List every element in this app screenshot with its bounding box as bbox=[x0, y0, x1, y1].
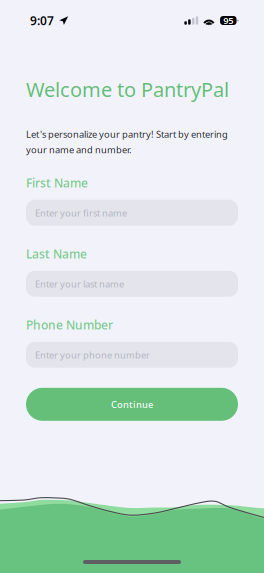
staticText: 9:07 bbox=[30, 12, 54, 28]
staticText: Let's personalize your pantry! Start by … bbox=[26, 128, 228, 156]
button[interactable]: Enter your last name bbox=[26, 271, 238, 297]
staticText: Enter your first name bbox=[35, 207, 127, 219]
staticText: Enter your last name bbox=[35, 278, 124, 290]
staticText: Phone Number bbox=[26, 317, 113, 333]
staticText: Continue bbox=[111, 398, 153, 410]
staticText: First Name bbox=[26, 175, 88, 191]
staticText: Enter your phone number bbox=[35, 349, 150, 361]
button[interactable]: Continue bbox=[26, 388, 238, 421]
button[interactable]: Enter your first name bbox=[26, 200, 238, 226]
button[interactable]: Enter your phone number bbox=[26, 342, 238, 368]
staticText: Welcome to PantryPal bbox=[26, 76, 229, 103]
staticText: Last Name bbox=[26, 246, 87, 262]
staticText: 95 bbox=[223, 14, 233, 27]
